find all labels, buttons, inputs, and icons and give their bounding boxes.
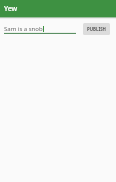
staticText: Sam is a snob <box>4 25 43 33</box>
button[interactable]: Post text field <box>4 23 76 34</box>
button[interactable]: PUBLISH <box>83 23 110 35</box>
staticText: Yew <box>4 4 18 14</box>
staticText: PUBLISH <box>87 26 106 32</box>
